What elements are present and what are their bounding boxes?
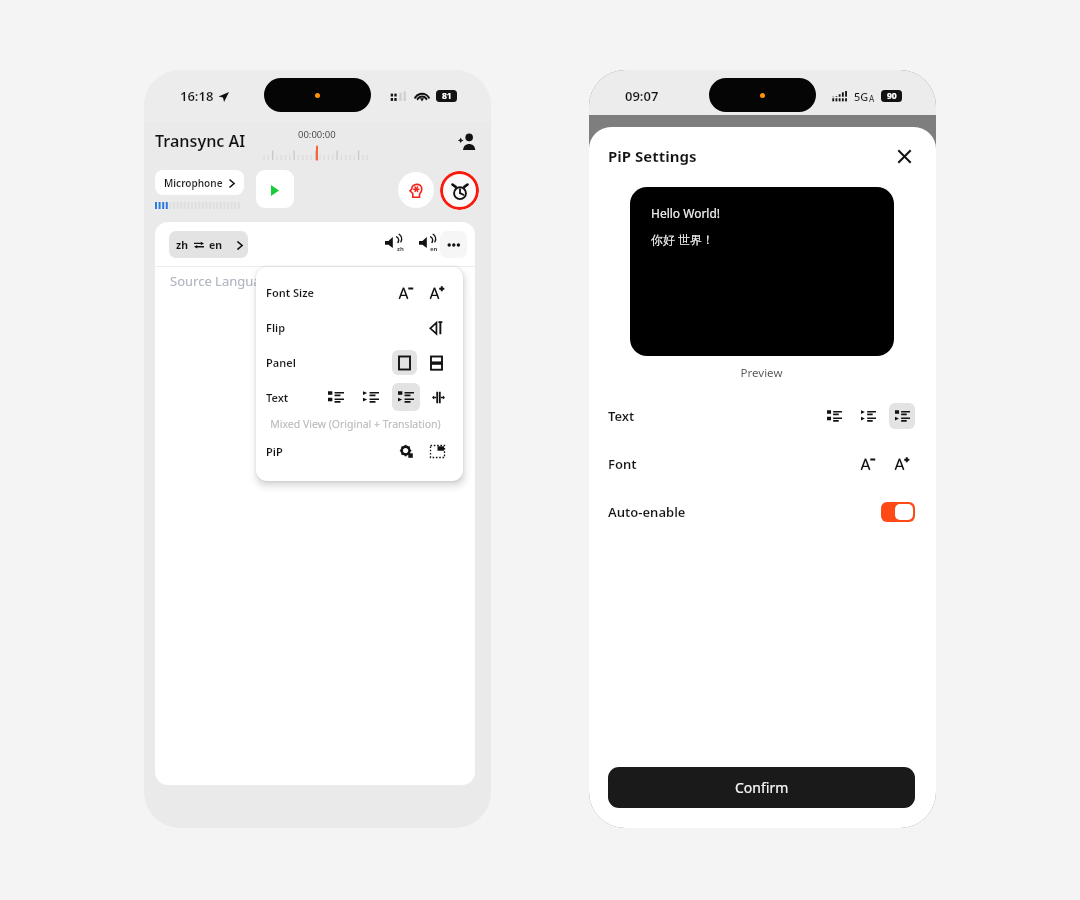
staticText: Transync AI — [155, 130, 246, 152]
button[interactable]: Microphone — [155, 170, 244, 195]
button[interactable]: Mixed view — [392, 383, 420, 411]
staticText: Text — [608, 407, 635, 425]
button[interactable]: Auto-enable — [881, 502, 915, 522]
staticText: Source Language — [170, 272, 276, 290]
button[interactable]: PiP settings — [394, 439, 418, 463]
staticText: Font Size — [266, 285, 314, 300]
button[interactable]: AI assistant — [398, 172, 434, 208]
staticText: 5G — [854, 89, 869, 104]
staticText: 你好 世界！ — [651, 231, 715, 247]
staticText: Auto-enable — [608, 503, 686, 521]
button[interactable]: Split panel — [424, 350, 449, 375]
staticText: zh — [397, 245, 404, 253]
staticText: Hello World! — [651, 205, 721, 221]
staticText: Text — [266, 390, 289, 405]
staticText: Mixed View (Original + Translation) — [264, 417, 447, 431]
staticText: PiP — [266, 444, 283, 459]
button[interactable]: zh — [169, 231, 248, 258]
button[interactable]: Add participant — [456, 130, 478, 152]
staticText: zh — [176, 238, 189, 252]
staticText: 09:07 — [625, 87, 659, 105]
staticText: Preview — [608, 365, 915, 381]
staticText: A — [869, 93, 875, 104]
button[interactable]: Translation only — [855, 403, 881, 429]
button[interactable]: Increase font size — [889, 451, 915, 477]
button[interactable]: Translation only — [357, 383, 385, 411]
button[interactable]: Single panel — [392, 350, 417, 375]
button[interactable]: Original only — [322, 383, 350, 411]
button[interactable]: Play zh audio — [381, 232, 405, 256]
staticText: PiP Settings — [608, 146, 697, 166]
staticText: en — [209, 238, 223, 252]
staticText: 81 — [442, 90, 452, 102]
button[interactable]: Mixed view — [889, 403, 915, 429]
button[interactable]: Increase font size — [425, 281, 449, 305]
staticText: 16:18 — [180, 87, 214, 105]
button[interactable]: Close — [893, 145, 915, 167]
staticText: Flip — [266, 320, 286, 335]
staticText: Microphone — [164, 176, 223, 190]
staticText: 90 — [887, 90, 897, 102]
button[interactable]: Play en audio — [415, 232, 439, 256]
button[interactable]: More options — [440, 231, 467, 258]
button[interactable]: Play — [256, 170, 294, 208]
button[interactable]: Decrease font size — [855, 451, 881, 477]
staticText: en — [430, 245, 438, 253]
button[interactable]: Decrease font size — [394, 281, 418, 305]
button[interactable]: Alarm — [440, 171, 479, 210]
button[interactable]: Enter PiP — [425, 439, 449, 463]
button[interactable]: Flip display — [425, 316, 449, 340]
staticText: Font — [608, 455, 637, 473]
button[interactable]: Original only — [821, 403, 847, 429]
button[interactable]: Confirm — [608, 767, 915, 808]
button[interactable]: Side by side — [427, 386, 449, 408]
staticText: Confirm — [735, 778, 789, 797]
staticText: Panel — [266, 355, 296, 370]
staticText: 00:00:00 — [298, 128, 336, 141]
